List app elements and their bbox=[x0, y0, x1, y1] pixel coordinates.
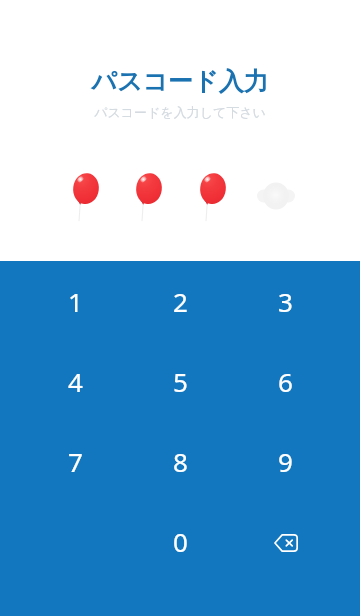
button[interactable]: Backspace bbox=[233, 501, 338, 581]
staticText: 9 bbox=[278, 444, 293, 479]
staticText: 5 bbox=[173, 364, 188, 399]
button[interactable]: 1 bbox=[22, 261, 128, 341]
staticText: 2 bbox=[173, 284, 188, 319]
button[interactable]: 8 bbox=[128, 421, 233, 501]
staticText: 0 bbox=[173, 524, 188, 559]
button[interactable]: 9 bbox=[233, 421, 338, 501]
button[interactable]: 2 bbox=[128, 261, 233, 341]
staticText: 8 bbox=[173, 444, 188, 479]
staticText: 7 bbox=[68, 444, 83, 479]
button[interactable]: 5 bbox=[128, 341, 233, 421]
button[interactable]: 4 bbox=[22, 341, 128, 421]
staticText: 1 bbox=[68, 284, 83, 319]
staticText: 3 bbox=[278, 284, 293, 319]
staticText: パスコードを入力して下さい bbox=[94, 104, 266, 120]
button[interactable]: 7 bbox=[22, 421, 128, 501]
button[interactable]: 3 bbox=[233, 261, 338, 341]
staticText: 6 bbox=[278, 364, 293, 399]
button[interactable]: 6 bbox=[233, 341, 338, 421]
button[interactable]: 0 bbox=[128, 501, 233, 581]
staticText: 4 bbox=[68, 364, 83, 399]
staticText: パスコード入力 bbox=[91, 66, 269, 97]
other: Backspace bbox=[274, 534, 298, 552]
